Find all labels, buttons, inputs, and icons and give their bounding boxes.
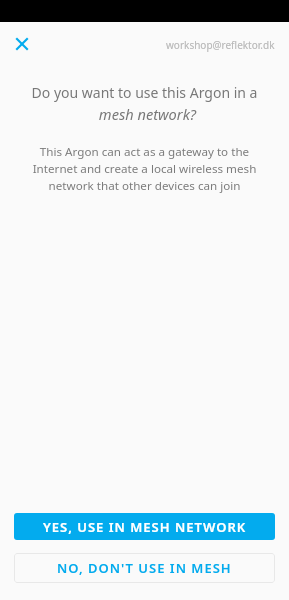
staticText: NO, DON'T USE IN MESH bbox=[57, 559, 232, 577]
staticText: mesh network? bbox=[3, 104, 289, 124]
staticText: YES, USE IN MESH NETWORK bbox=[43, 518, 247, 536]
button[interactable]: NO, DON'T USE IN MESH bbox=[14, 553, 275, 583]
staticText: This Argon can act as a gateway to the I… bbox=[26, 144, 263, 194]
staticText: Do you want to use this Argon in a bbox=[0, 83, 289, 102]
staticText: workshop@reflektor.dk bbox=[166, 38, 275, 52]
button[interactable]: Close bbox=[0, 22, 44, 66]
button[interactable]: YES, USE IN MESH NETWORK bbox=[14, 513, 275, 540]
